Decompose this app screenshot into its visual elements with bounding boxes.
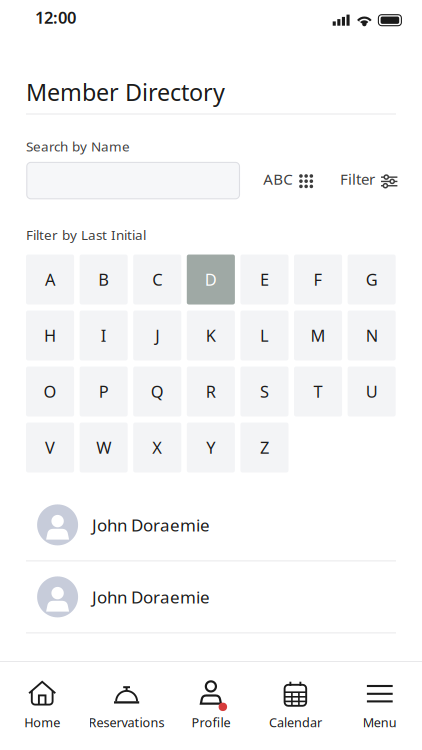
button[interactable]: Reservations [84, 662, 169, 750]
staticText: S [260, 380, 269, 403]
button[interactable]: F [294, 254, 342, 304]
button[interactable]: L [240, 310, 288, 360]
staticText: W [96, 436, 111, 459]
button[interactable]: Q [133, 366, 181, 416]
button[interactable]: O [26, 366, 74, 416]
staticText: John Doraemie [92, 513, 210, 536]
staticText: John Doraemie [92, 585, 210, 608]
button[interactable]: V [26, 422, 74, 472]
staticText: B [98, 268, 109, 291]
staticText: O [43, 380, 56, 403]
staticText: V [45, 436, 55, 459]
staticText: G [366, 268, 378, 291]
staticText: Calendar [269, 714, 322, 731]
button[interactable]: K [187, 310, 235, 360]
staticText: P [99, 380, 109, 403]
button[interactable]: B [80, 254, 128, 304]
button[interactable]: Search by Name [27, 162, 239, 199]
button[interactable]: S [240, 366, 288, 416]
staticText: T [314, 380, 323, 403]
button[interactable]: I [80, 310, 128, 360]
staticText: Q [151, 380, 164, 403]
staticText: Y [206, 436, 215, 459]
button[interactable]: Z [240, 422, 288, 472]
button[interactable]: John Doraemie [26, 561, 396, 633]
staticText: Home [24, 714, 60, 731]
button[interactable]: J [133, 310, 181, 360]
staticText: Filter by Last Initial [26, 225, 146, 244]
staticText: Profile [191, 714, 230, 731]
button[interactable]: W [80, 422, 128, 472]
staticText: H [44, 324, 56, 347]
staticText: Filter [340, 169, 375, 189]
staticText: E [260, 268, 269, 291]
button[interactable]: R [187, 366, 235, 416]
staticText: A [45, 268, 55, 291]
button[interactable]: N [348, 310, 396, 360]
staticText: 12:00 [35, 6, 76, 29]
button[interactable]: Home [0, 662, 84, 750]
button[interactable]: U [348, 366, 396, 416]
staticText: I [101, 324, 107, 347]
staticText: J [155, 324, 159, 347]
button[interactable]: X [133, 422, 181, 472]
staticText: M [311, 324, 326, 347]
button[interactable]: A [26, 254, 74, 304]
button[interactable]: H [26, 310, 74, 360]
button[interactable]: D [187, 254, 235, 304]
staticText: ABC [263, 169, 293, 189]
staticText: U [366, 380, 378, 403]
button[interactable]: E [240, 254, 288, 304]
button[interactable]: C [133, 254, 181, 304]
button[interactable]: Y [187, 422, 235, 472]
button[interactable]: P [80, 366, 128, 416]
staticText: F [314, 268, 323, 291]
staticText: L [260, 324, 269, 347]
staticText: N [366, 324, 378, 347]
staticText: D [205, 268, 217, 291]
button[interactable]: M [294, 310, 342, 360]
button[interactable]: Profile [169, 662, 253, 750]
staticText: C [152, 268, 162, 291]
staticText: R [206, 380, 216, 403]
button[interactable]: Calendar [253, 662, 338, 750]
button[interactable]: Filter [340, 170, 397, 188]
staticText: Reservations [89, 714, 165, 731]
staticText: X [152, 436, 162, 459]
button[interactable]: John Doraemie [26, 489, 396, 561]
staticText: Z [260, 436, 269, 459]
button[interactable]: Menu [338, 662, 422, 750]
staticText: Search by Name [26, 137, 130, 155]
staticText: Member Directory [26, 76, 225, 108]
button[interactable]: T [294, 366, 342, 416]
button[interactable]: ABC [263, 170, 313, 188]
staticText: K [206, 324, 216, 347]
staticText: Menu [363, 714, 397, 731]
button[interactable]: G [348, 254, 396, 304]
